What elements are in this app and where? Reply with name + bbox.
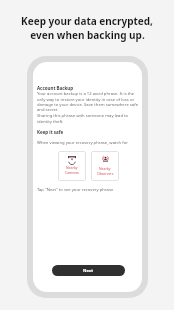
other: Nearby observers	[101, 156, 110, 162]
staticText: Keep your data encrypted,	[21, 14, 153, 28]
other: Nearby cameras	[68, 156, 76, 161]
staticText: Cameras	[65, 170, 79, 175]
staticText: Observers	[97, 171, 114, 176]
staticText: Nearby	[99, 166, 111, 171]
staticText: Tap "Next" to see your recovery phrase	[37, 187, 114, 193]
staticText: Sharing this phrase with someone may lea…	[37, 113, 139, 124]
staticText: Next	[83, 268, 94, 274]
staticText: Nearby	[66, 165, 78, 170]
staticText: even when backing up.	[30, 28, 145, 42]
staticText: Keep it safe	[37, 129, 64, 135]
staticText: Your account backup is a 12 word phrase.…	[37, 91, 139, 112]
staticText: Account Backup	[37, 85, 74, 91]
button[interactable]: Next	[52, 265, 125, 276]
staticText: When viewing your recovery phrase, watch…	[37, 140, 128, 146]
button[interactable]: Nearby observers	[91, 151, 119, 181]
button[interactable]: Nearby cameras	[58, 151, 86, 181]
